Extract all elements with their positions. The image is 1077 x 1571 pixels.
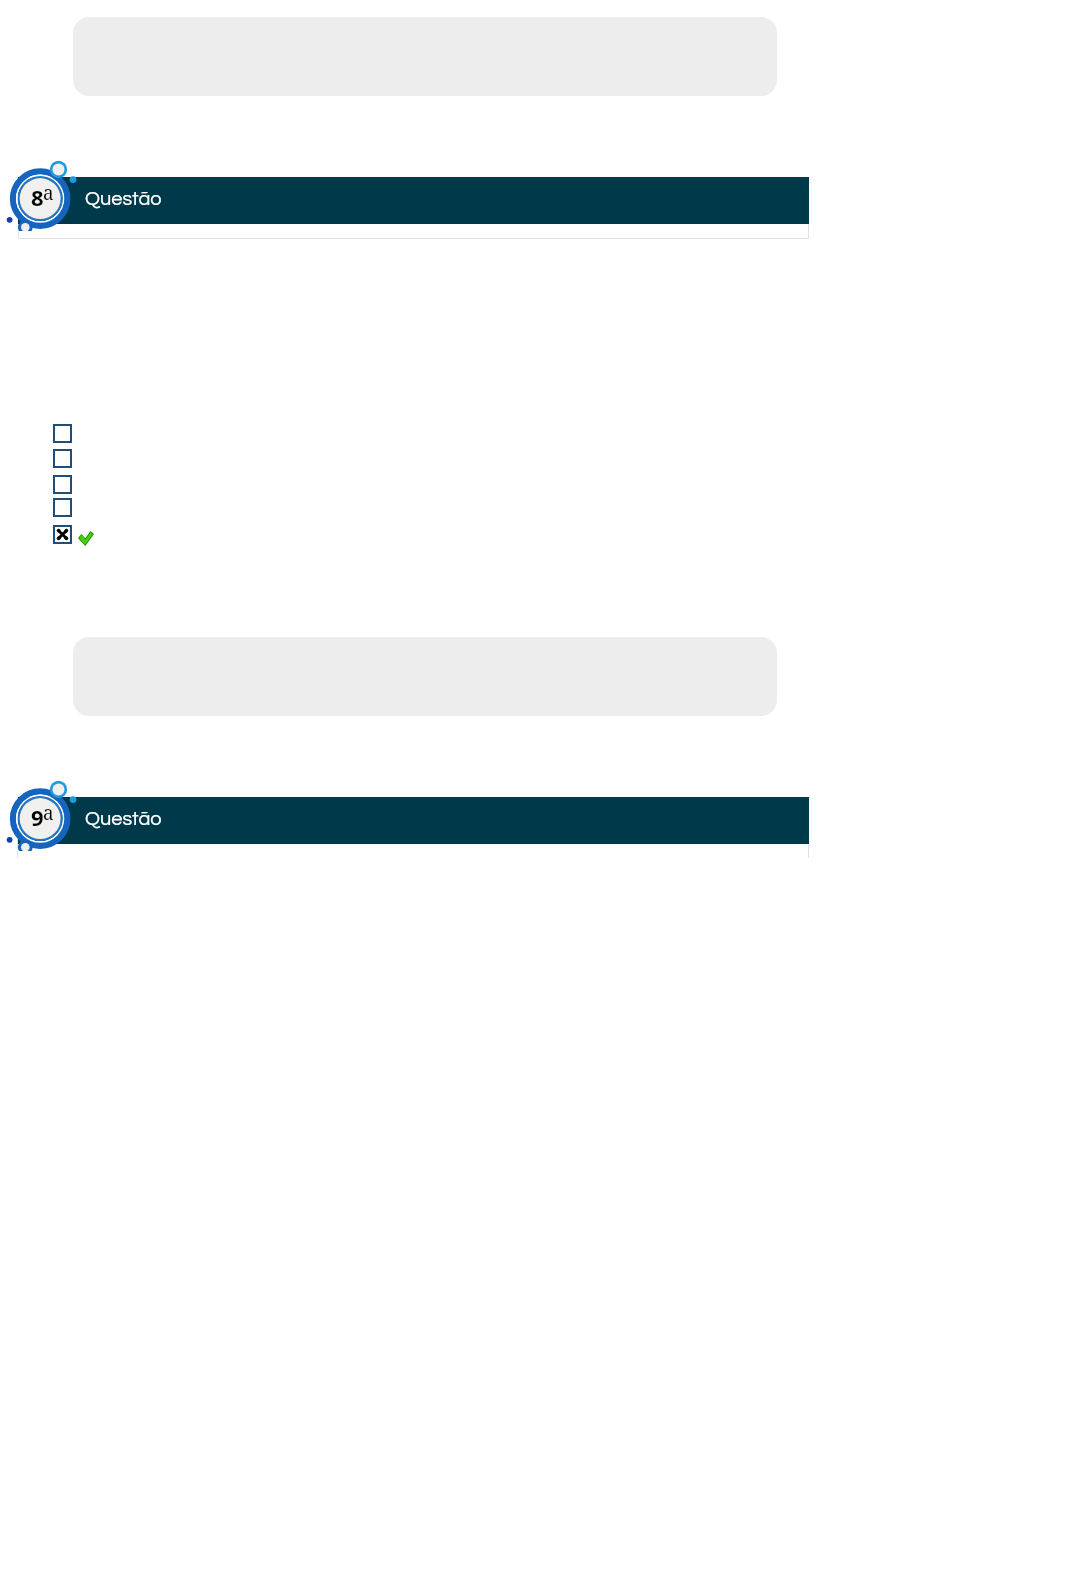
- button[interactable]: Questão: [18, 177, 809, 224]
- staticText: Questão: [85, 809, 162, 830]
- button[interactable]: [53, 449, 72, 468]
- button[interactable]: [53, 475, 72, 494]
- staticText: a: [43, 800, 54, 826]
- button[interactable]: [53, 498, 72, 517]
- staticText: 9: [31, 802, 44, 832]
- button[interactable]: Questão 8: [2, 160, 86, 231]
- button[interactable]: [53, 525, 72, 544]
- staticText: 8: [31, 182, 44, 212]
- staticText: Questão: [85, 189, 162, 210]
- staticText: a: [43, 180, 54, 206]
- button[interactable]: [53, 424, 72, 443]
- button[interactable]: Questão 9: [2, 780, 86, 851]
- button[interactable]: Questão: [18, 797, 809, 844]
